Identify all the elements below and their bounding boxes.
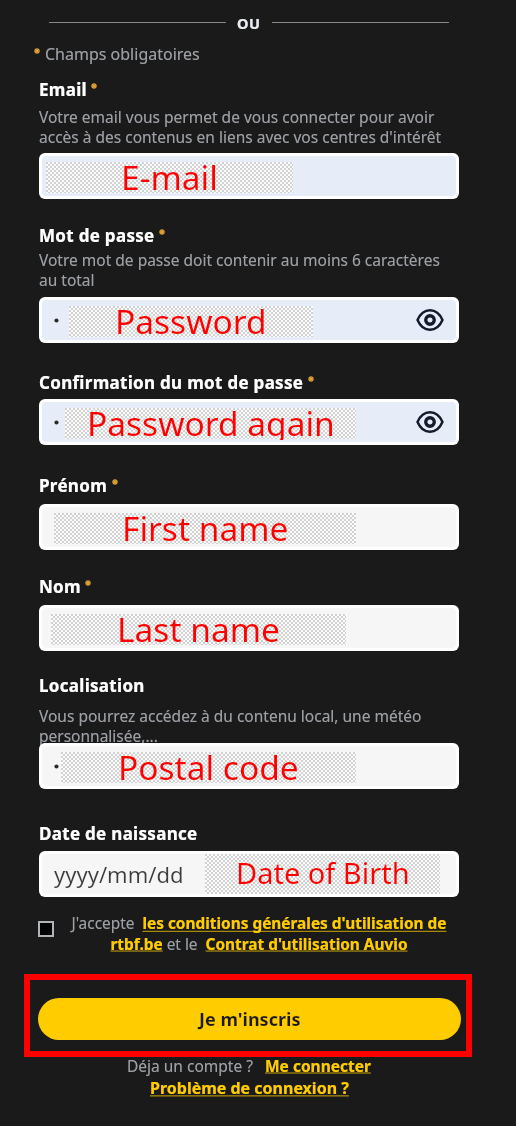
staticText: Password [115, 300, 267, 338]
button[interactable]: Last name [42, 608, 456, 648]
button[interactable]: First name [42, 507, 456, 547]
staticText: Postal code [118, 746, 299, 784]
staticText: Mot de passe [39, 224, 155, 247]
staticText: E-mail [121, 156, 218, 194]
staticText: Votre email vous permet de vous connecte… [39, 106, 449, 147]
staticText: Date of Birth [236, 854, 410, 892]
button[interactable]: E-mail [42, 156, 456, 196]
staticText: Nom [39, 575, 81, 598]
staticText: Votre mot de passe doit contenir au moin… [39, 249, 449, 290]
staticText: Email [39, 78, 87, 101]
staticText: First name [122, 507, 289, 545]
button[interactable]: Postal code [42, 746, 456, 786]
staticText: yyyy/mm/dd [54, 859, 184, 889]
staticText: Vous pourrez accédez à du contenu local,… [39, 705, 449, 746]
staticText: Confirmation du mot de passe [39, 371, 304, 394]
staticText: Champs obligatoires [45, 43, 200, 65]
staticText: Password again [87, 402, 335, 440]
button[interactable]: Problème de connexion ? [150, 1077, 349, 1099]
staticText: Prénom [39, 474, 108, 497]
button[interactable]: Déja un compte ? Me connecter [127, 1055, 371, 1076]
staticText: Date de naissance [39, 822, 198, 845]
staticText: J'accepte les conditions générales d'uti… [66, 913, 452, 954]
button[interactable]: yyyy/mm/dd [42, 854, 456, 894]
button[interactable]: Je m'inscris [38, 998, 461, 1040]
staticText: Je m'inscris [199, 1007, 301, 1032]
button[interactable]: Show password [417, 409, 443, 435]
button[interactable]: Show password [417, 307, 443, 333]
staticText: Last name [117, 608, 280, 646]
staticText: OU [237, 13, 261, 33]
button[interactable]: Password again [42, 402, 456, 442]
staticText: Localisation [39, 674, 145, 697]
button[interactable]: Password [42, 300, 456, 340]
